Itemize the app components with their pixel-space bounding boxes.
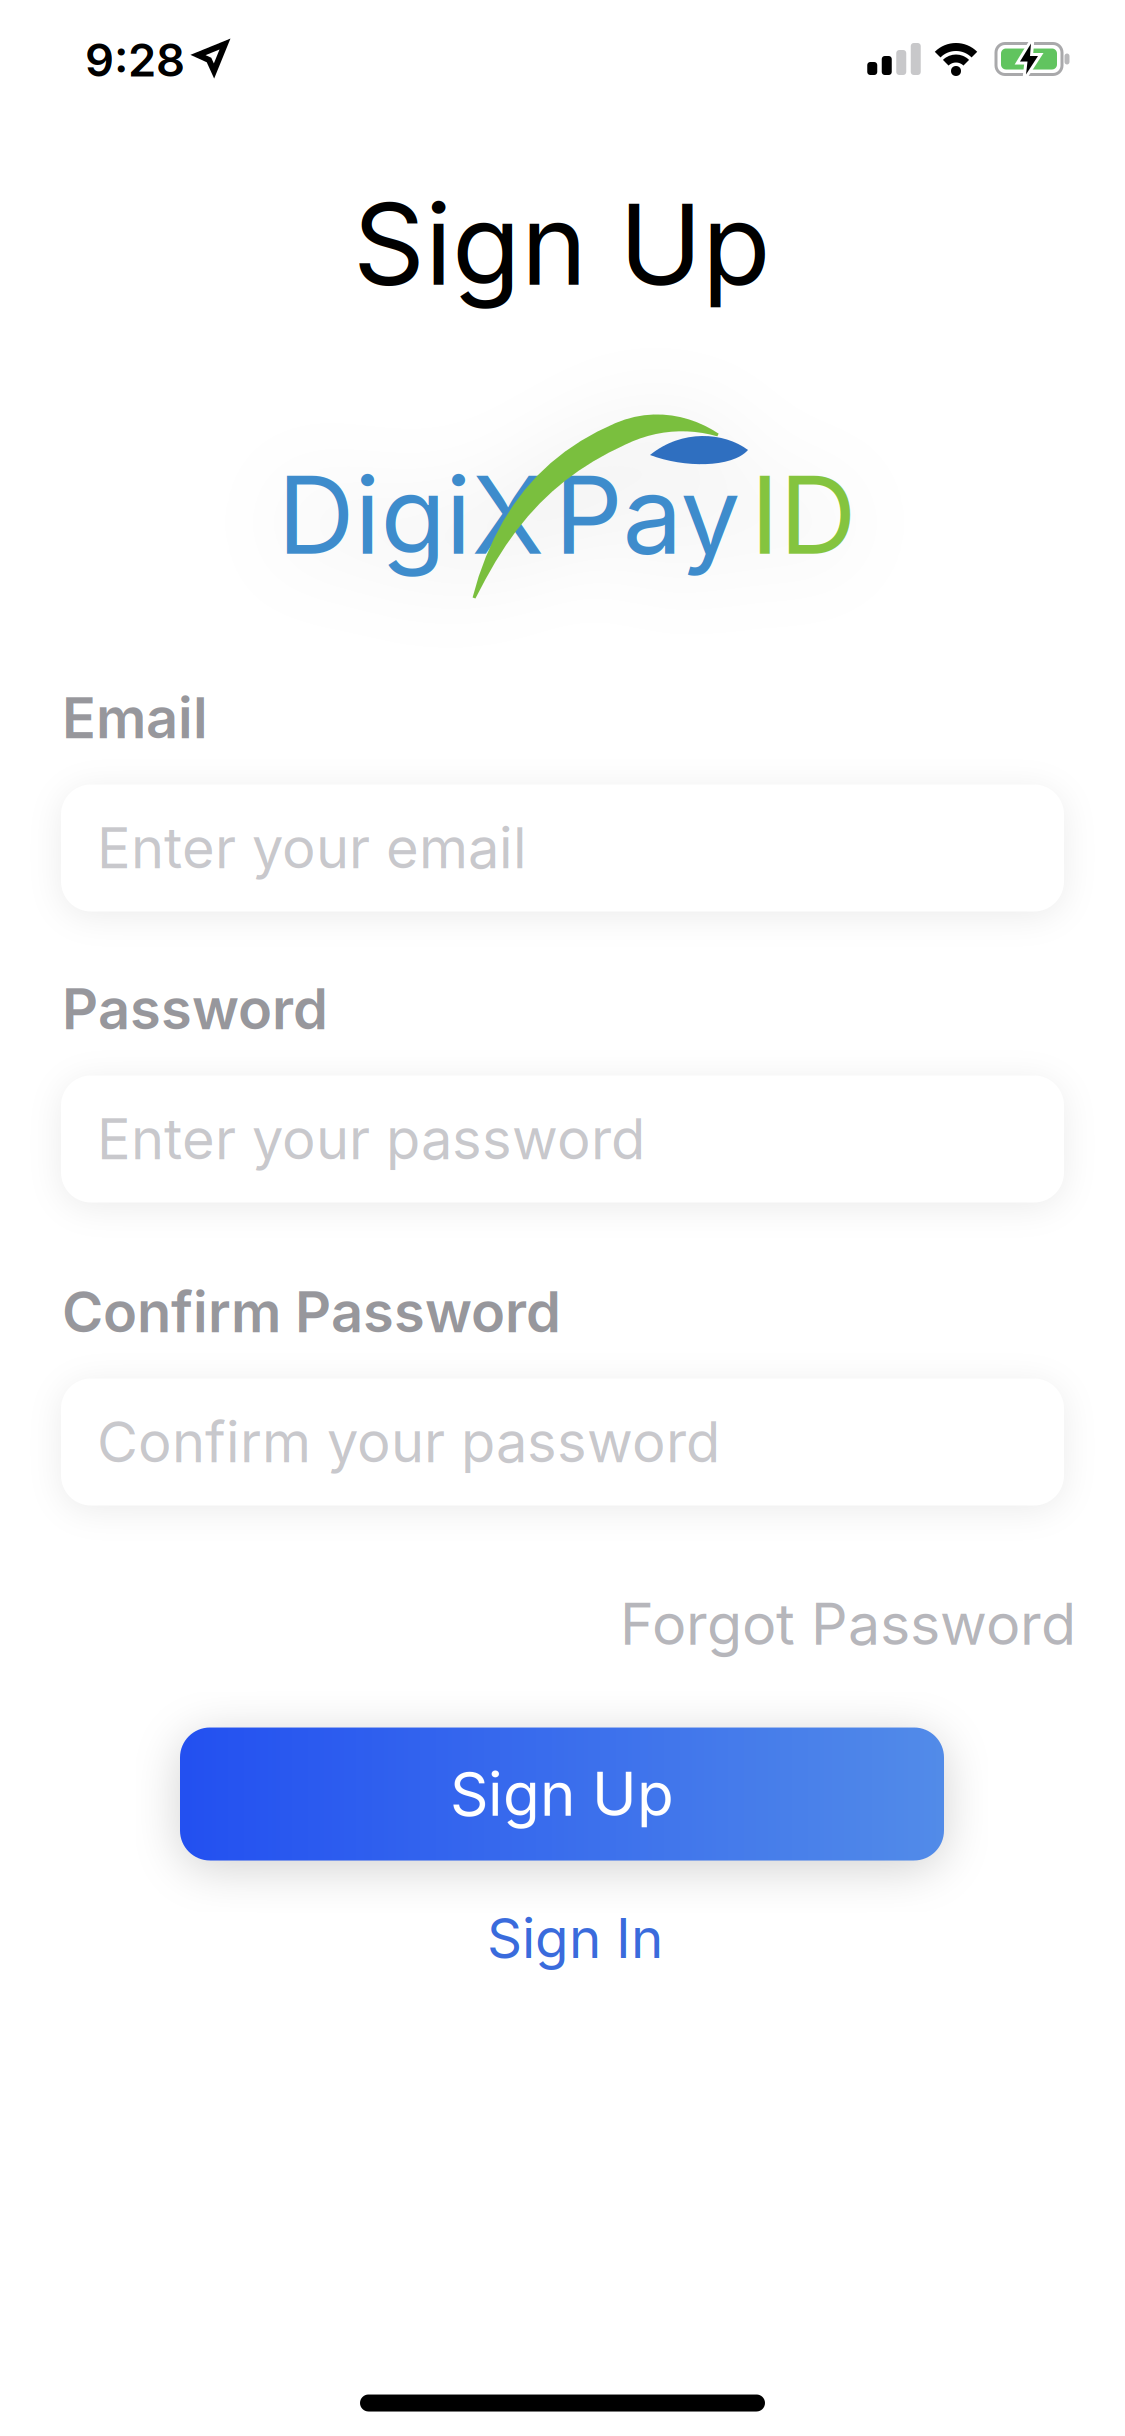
staticText: 9:28 [85, 33, 185, 87]
staticText: Forgot Password [620, 1590, 1076, 1658]
button[interactable]: Confirm your password [61, 1378, 1064, 1505]
button[interactable]: Forgot Password [620, 1590, 1076, 1658]
button[interactable]: Enter your password [61, 1075, 1064, 1202]
staticText: Enter your password [97, 1106, 645, 1172]
staticText: Pay [554, 452, 740, 578]
staticText: Sign In [487, 1906, 663, 1970]
staticText: Sign Up [353, 178, 771, 310]
staticText: Sign Up [450, 1759, 674, 1829]
staticText: Email [62, 685, 208, 751]
staticText: Confirm your password [97, 1409, 720, 1475]
button[interactable]: Enter your email [61, 784, 1064, 911]
staticText: Password [62, 976, 328, 1042]
button[interactable]: Sign In [487, 1906, 663, 1970]
button[interactable]: Sign Up [180, 1727, 944, 1860]
staticText: DigiX [277, 452, 544, 578]
staticText: Confirm Password [62, 1279, 561, 1345]
staticText: ID [750, 452, 856, 578]
staticText: Enter your email [97, 815, 527, 881]
